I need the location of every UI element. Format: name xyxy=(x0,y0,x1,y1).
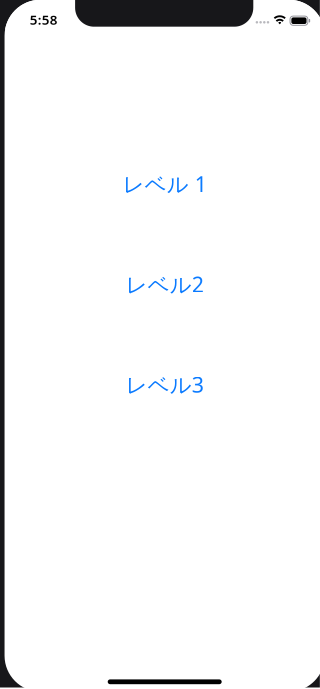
button[interactable]: レベル3 xyxy=(4,370,320,399)
button[interactable]: レベル2 xyxy=(4,270,320,298)
staticText: レベル2 xyxy=(126,270,204,298)
staticText: レベル3 xyxy=(126,370,204,399)
button[interactable]: レベル 1 xyxy=(4,170,320,198)
staticText: 5:58 xyxy=(30,11,58,28)
staticText: レベル 1 xyxy=(123,170,207,198)
